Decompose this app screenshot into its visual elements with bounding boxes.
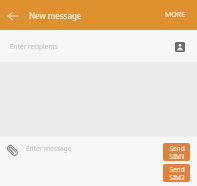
staticText: Enter message [26, 144, 72, 153]
button[interactable]: MORE [154, 0, 197, 30]
staticText: Send SIM2 [169, 165, 185, 182]
staticText: MORE [165, 10, 186, 20]
button[interactable]: Navigate up [0, 2, 26, 29]
staticText: New message [29, 10, 82, 21]
button[interactable]: Attach file [4, 142, 21, 159]
button[interactable]: Enter message [22, 137, 72, 159]
staticText: Send SIM1 [169, 144, 185, 161]
button[interactable]: Send with SIM 1 [163, 143, 190, 161]
button[interactable]: Send with SIM 2 [163, 164, 190, 182]
button[interactable]: Add recipient from contacts [170, 37, 189, 56]
staticText: Enter recipients [10, 42, 58, 51]
button[interactable]: Enter recipients [0, 30, 197, 62]
